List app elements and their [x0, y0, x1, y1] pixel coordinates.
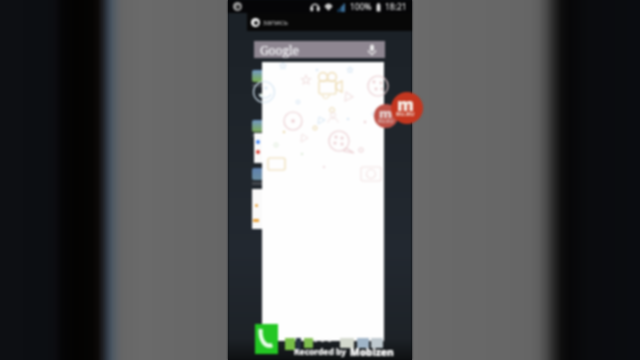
staticText: m — [379, 104, 393, 122]
button[interactable]: App — [252, 120, 263, 132]
button[interactable]: Play Store — [304, 338, 313, 348]
button[interactable]: Google — [254, 41, 385, 58]
staticText: Mobizen — [350, 345, 394, 359]
button[interactable]: Messages — [285, 338, 295, 350]
button[interactable]: App — [252, 168, 263, 180]
button[interactable]: Card — [254, 133, 263, 163]
button[interactable]: запись — [251, 13, 412, 31]
button[interactable]: Camera — [340, 338, 354, 348]
staticText: Google — [260, 42, 300, 58]
other: Voice search — [368, 44, 376, 56]
button[interactable]: App — [252, 70, 263, 82]
staticText: RU.RU — [378, 118, 394, 125]
button[interactable]: Phone — [255, 324, 278, 354]
button[interactable]: Card — [252, 189, 263, 229]
staticText: 18:21 — [385, 1, 407, 13]
button[interactable]: Browser — [357, 338, 369, 348]
staticText: 100% — [350, 1, 372, 13]
button[interactable]: Gallery — [371, 338, 383, 348]
staticText: Recorded by — [294, 346, 347, 358]
staticText: m — [397, 93, 414, 116]
button[interactable]: Apps — [296, 338, 301, 350]
staticText: RU.RU — [396, 110, 415, 118]
staticText: запись — [263, 17, 288, 27]
